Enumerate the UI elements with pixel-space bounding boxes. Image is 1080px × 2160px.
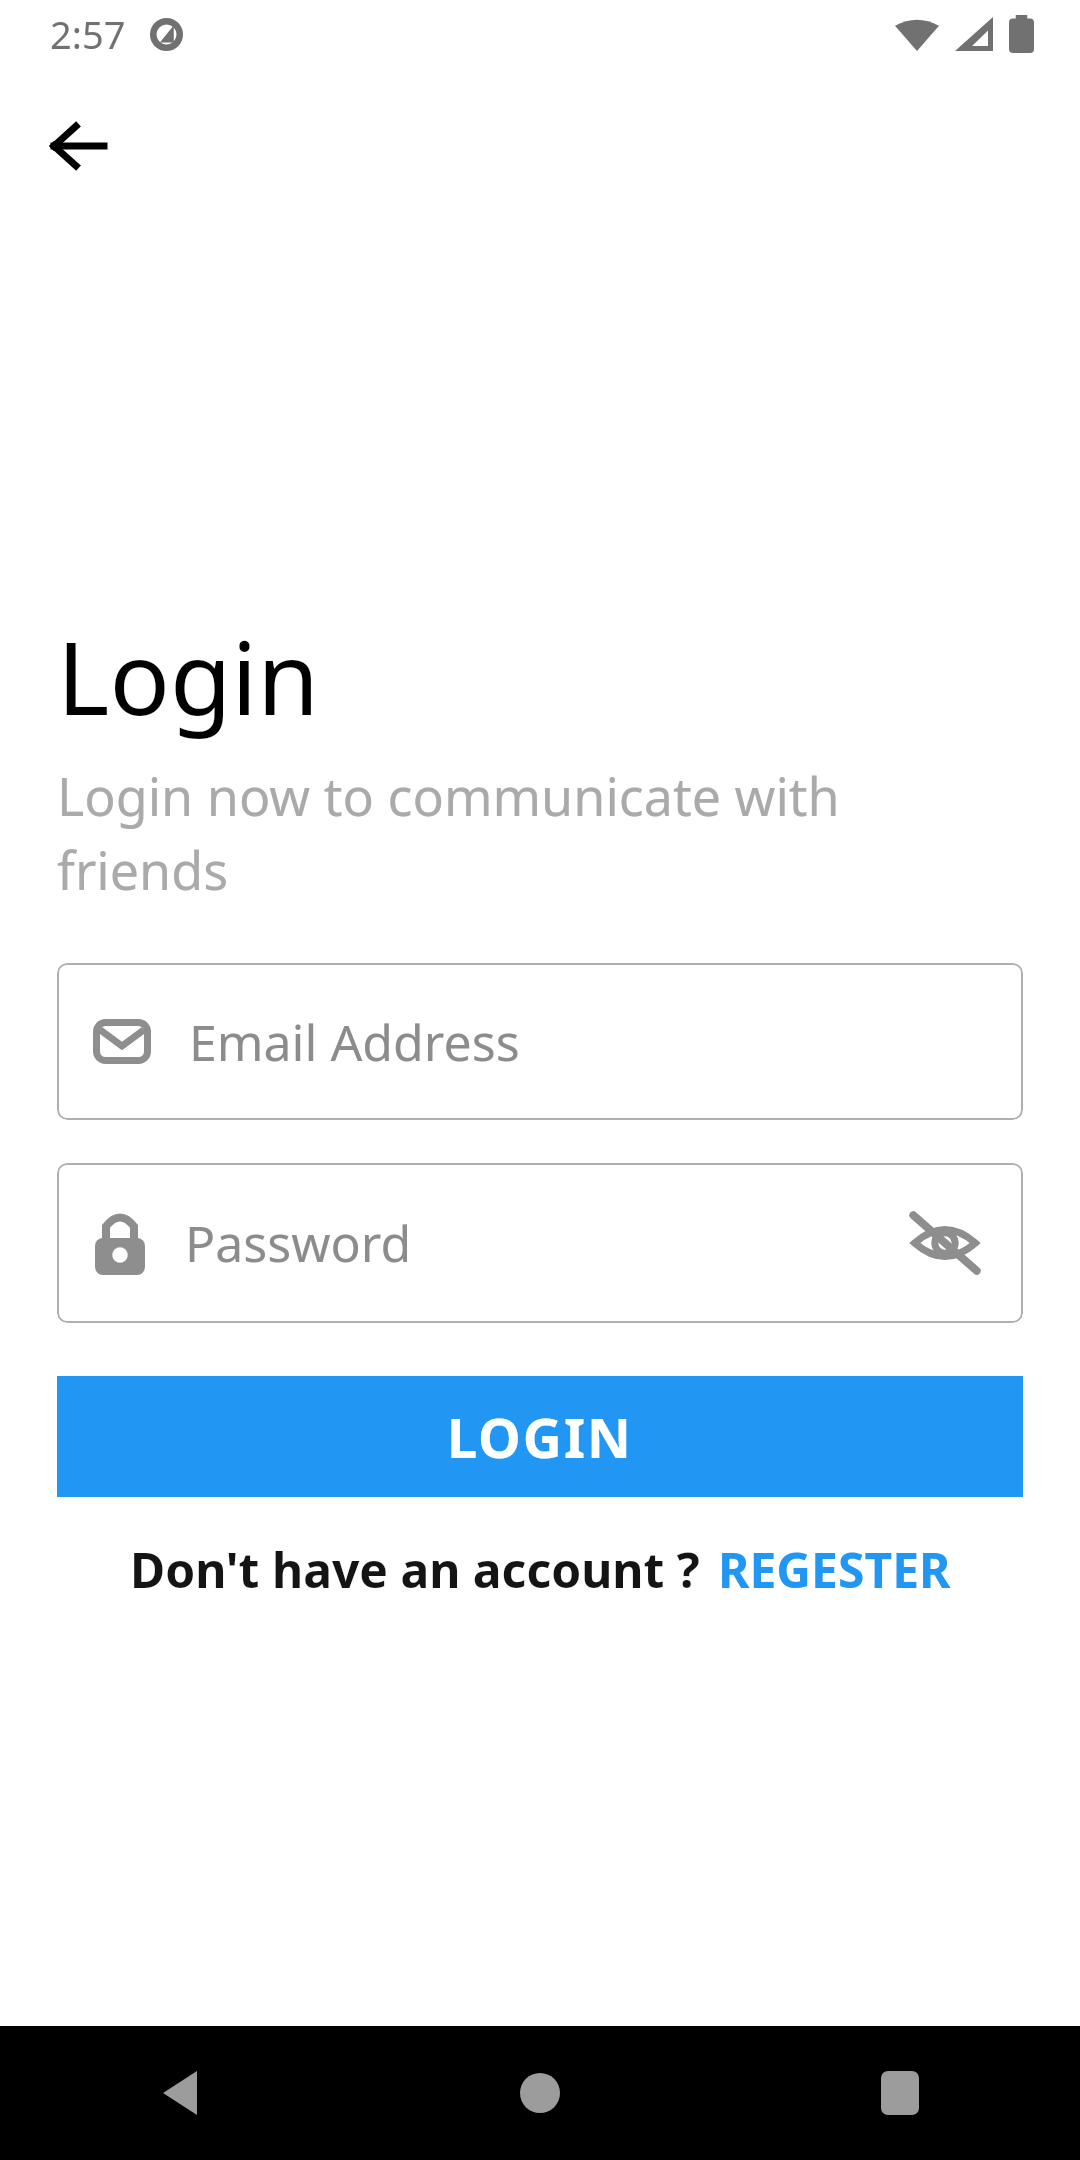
staticText: Password <box>185 1209 412 1277</box>
staticText: Email Address <box>189 1008 520 1076</box>
button[interactable]: Back <box>0 2026 360 2160</box>
button[interactable]: Recent apps <box>720 2026 1080 2160</box>
button[interactable]: Back <box>30 98 126 194</box>
button[interactable]: Password <box>57 1163 1023 1323</box>
button[interactable]: Email Address <box>57 963 1023 1120</box>
button[interactable]: REGESTER <box>718 1537 951 1602</box>
button[interactable]: Show password <box>897 1195 993 1291</box>
staticText: Login <box>57 608 319 744</box>
staticText: 2:57 <box>50 8 126 60</box>
button[interactable]: Home <box>360 2026 720 2160</box>
staticText: LOGIN <box>447 1400 633 1474</box>
staticText: REGESTER <box>718 1537 951 1602</box>
staticText: Don't have an account ? <box>130 1537 700 1602</box>
button[interactable]: LOGIN <box>57 1376 1023 1497</box>
staticText: Login now to communicate with friends <box>57 760 1023 905</box>
